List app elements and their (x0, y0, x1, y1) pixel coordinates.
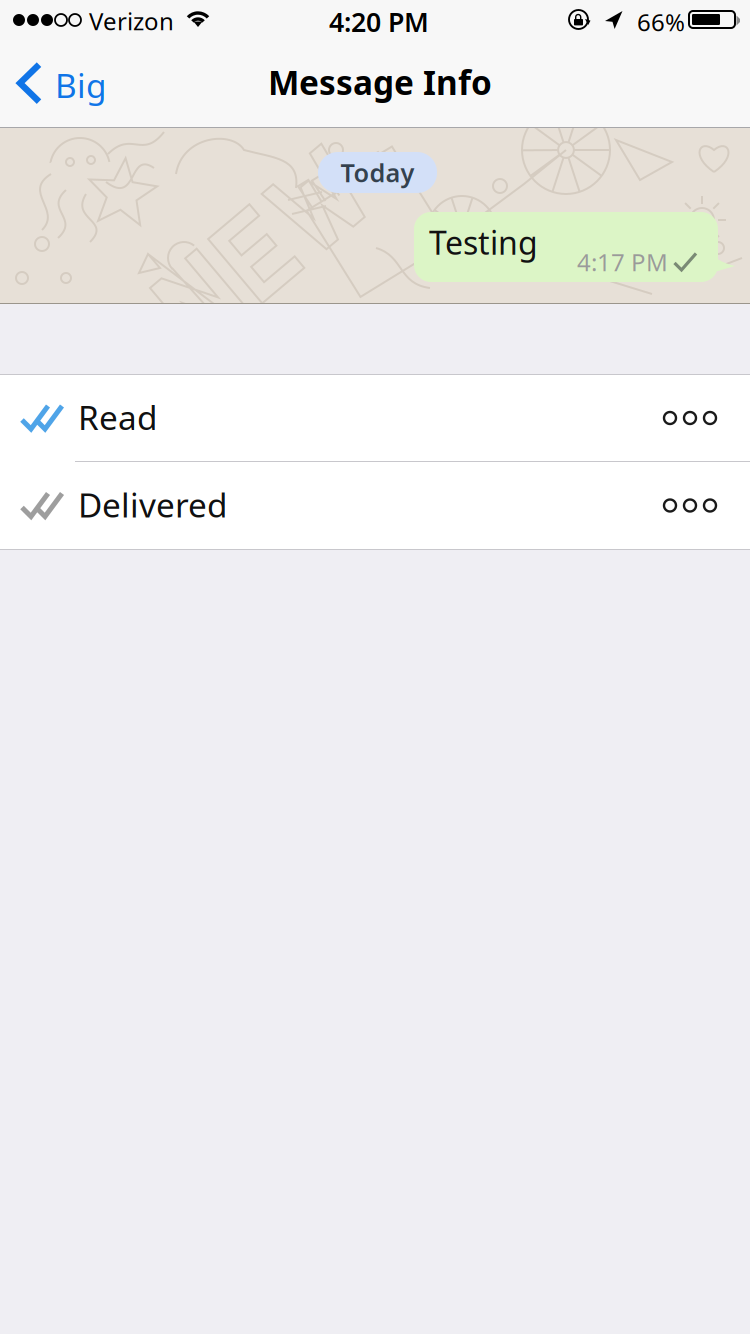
staticText: Delivered (78, 482, 228, 527)
staticText: Testing (429, 221, 538, 263)
staticText: Today (340, 156, 414, 189)
staticText: 4:20 PM (329, 4, 429, 39)
staticText: 66% (637, 6, 685, 38)
staticText: Verizon (89, 5, 174, 37)
staticText: Message Info (268, 60, 492, 104)
button[interactable]: Delivered (0, 462, 750, 549)
button[interactable]: Big (0, 52, 121, 114)
button[interactable]: Read (0, 375, 750, 461)
staticText: Read (78, 395, 158, 439)
staticText: 4:17 PM (577, 246, 668, 278)
staticText: Big (55, 63, 107, 107)
